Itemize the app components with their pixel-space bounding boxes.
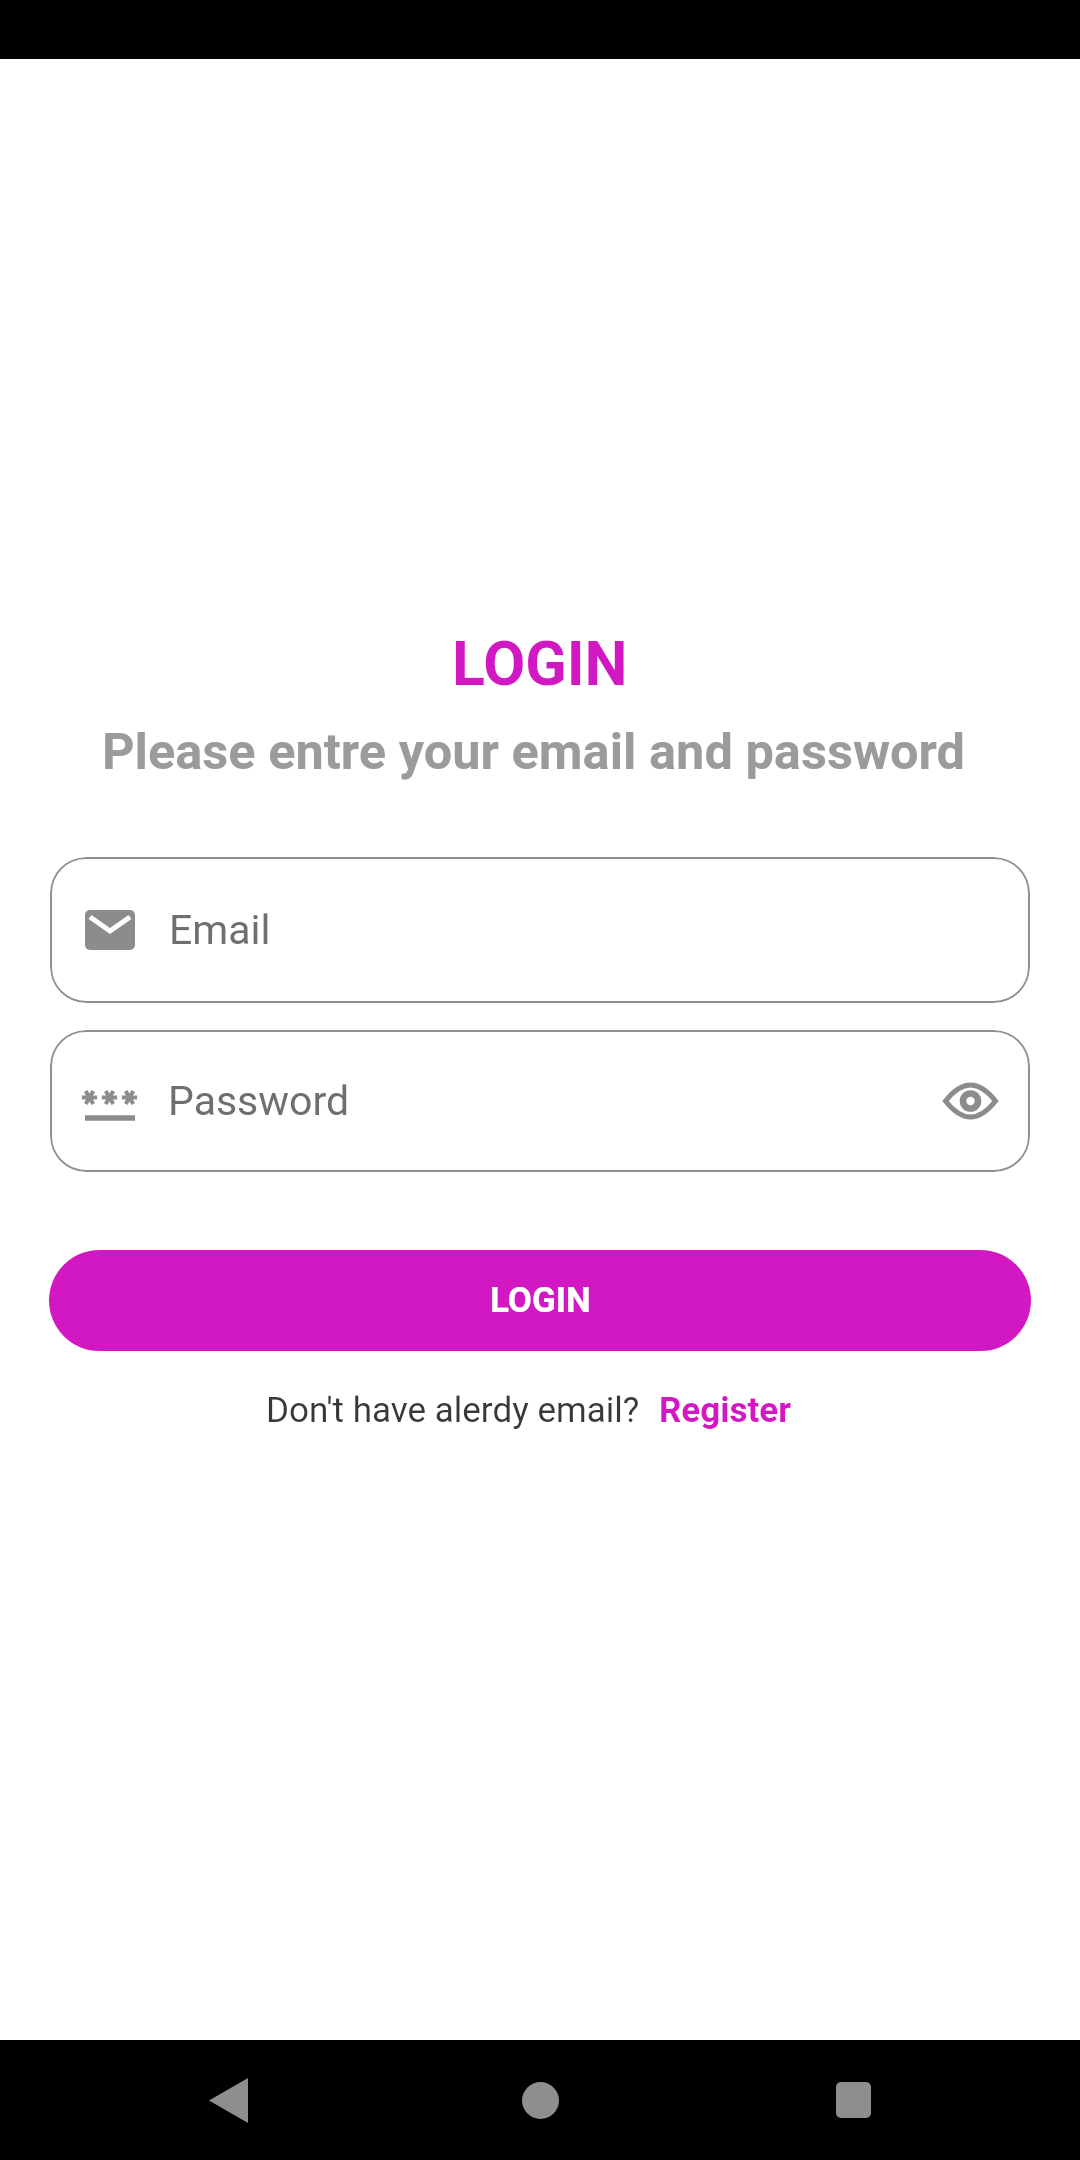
staticText: LOGIN	[452, 628, 628, 699]
staticText: LOGIN	[490, 1280, 591, 1321]
button[interactable]: Password	[50, 1030, 1030, 1172]
button[interactable]	[500, 2060, 580, 2140]
button[interactable]	[188, 2060, 268, 2140]
staticText: Email	[169, 906, 271, 954]
staticText: Password	[168, 1077, 350, 1125]
staticText: Please entre your email and password	[102, 722, 966, 781]
button[interactable]: LOGIN	[49, 1250, 1031, 1351]
button[interactable]	[813, 2060, 893, 2140]
staticText: Register	[659, 1390, 792, 1431]
button[interactable]: Email	[50, 857, 1030, 1003]
staticText: Don't have alerdy email?	[266, 1390, 640, 1431]
button[interactable]: Register	[659, 1390, 792, 1431]
